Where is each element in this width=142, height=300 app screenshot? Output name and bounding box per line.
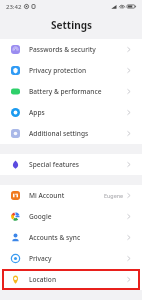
staticText: Privacy protection [29,66,87,75]
button[interactable]: Google [0,206,142,227]
button[interactable]: Apps [0,102,142,123]
button[interactable]: Special features [0,154,142,175]
staticText: Accounts & sync [29,233,81,242]
button[interactable]: Privacy [0,248,142,269]
staticText: Mi Account [29,191,65,200]
staticText: Special features [29,160,79,169]
staticText: Settings [51,18,92,32]
button[interactable]: Battery & performance [0,81,142,102]
button[interactable]: Additional settings [0,123,142,144]
button[interactable]: Privacy protection [0,60,142,81]
button[interactable]: Location [2,269,140,290]
button[interactable]: Accounts & sync [0,227,142,248]
staticText: Location [29,275,57,284]
button[interactable]: Mi Account [0,185,142,206]
staticText: Additional settings [29,129,89,138]
staticText: Eugene [104,192,124,199]
staticText: Apps [29,108,45,117]
button[interactable]: Passwords & security [0,39,142,60]
staticText: 23:42 [6,3,22,11]
staticText: Google [29,212,52,221]
staticText: Battery & performance [29,87,102,96]
staticText: Passwords & security [29,45,96,54]
staticText: Privacy [29,254,52,263]
